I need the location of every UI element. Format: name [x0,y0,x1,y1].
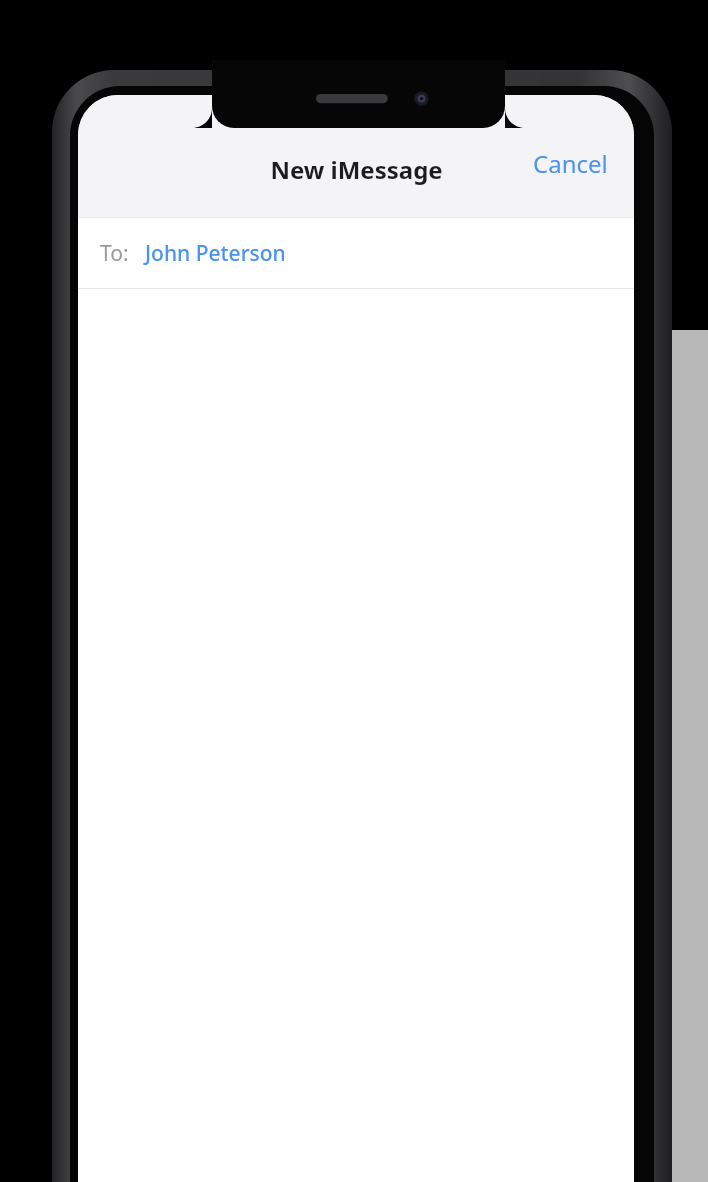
staticText: New iMessage [270,153,443,186]
staticText: Cancel [533,147,608,180]
staticText: To: [100,239,129,268]
button[interactable]: Cancel [529,141,612,186]
staticText: John Peterson [145,239,286,268]
button[interactable]: To: [78,218,634,288]
